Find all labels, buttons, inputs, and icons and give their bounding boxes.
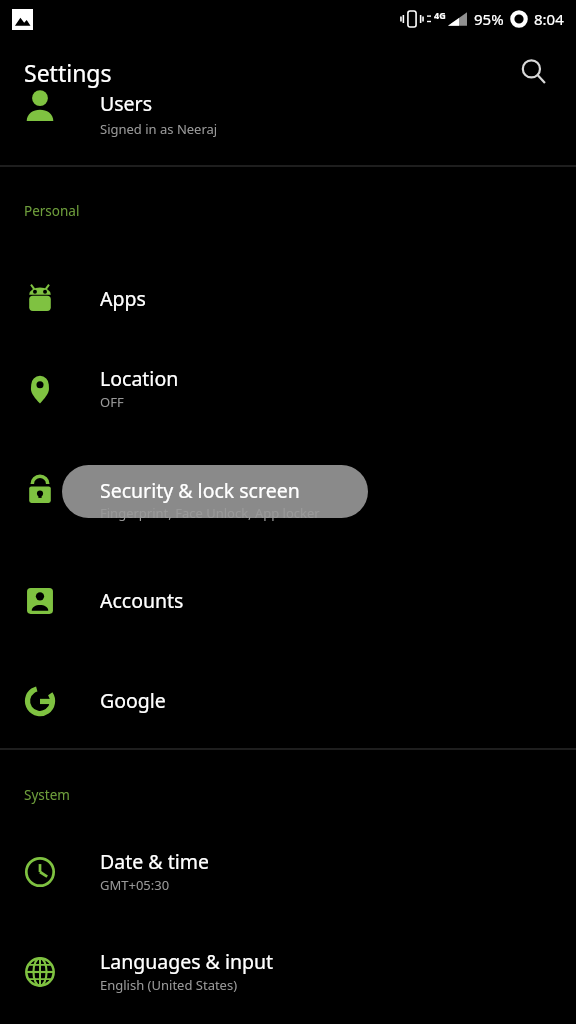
staticText: 95% bbox=[474, 9, 504, 29]
staticText: 4G bbox=[434, 9, 446, 21]
staticText: Accounts bbox=[100, 587, 184, 614]
staticText: Languages & input bbox=[100, 948, 274, 975]
staticText: Date & time bbox=[100, 848, 209, 875]
button[interactable]: Users bbox=[0, 96, 576, 165]
button[interactable]: Location bbox=[0, 352, 576, 434]
staticText: OFF bbox=[100, 393, 124, 411]
staticText: GMT+05:30 bbox=[100, 876, 170, 894]
button[interactable]: Accounts bbox=[0, 564, 576, 638]
staticText: Google bbox=[100, 687, 166, 714]
staticText: Settings bbox=[24, 57, 112, 88]
button[interactable]: Search bbox=[510, 48, 558, 96]
staticText: English (United States) bbox=[100, 976, 238, 994]
staticText: Signed in as Neeraj bbox=[100, 120, 218, 138]
staticText: Location bbox=[100, 365, 179, 392]
staticText: Apps bbox=[100, 285, 146, 312]
button[interactable]: Google bbox=[0, 664, 576, 738]
staticText: Security & lock screen bbox=[100, 477, 300, 504]
staticText: 8:04 bbox=[534, 9, 564, 29]
staticText: System bbox=[24, 786, 70, 804]
button[interactable]: Apps bbox=[0, 262, 576, 336]
button[interactable]: Languages & input bbox=[0, 935, 576, 1017]
staticText: Personal bbox=[24, 202, 80, 220]
staticText: Fingerprint, Face Unlock, App locker bbox=[100, 504, 320, 522]
staticText: Users bbox=[100, 90, 152, 117]
button[interactable]: Security & lock screen bbox=[0, 453, 576, 527]
button[interactable]: Date & time bbox=[0, 835, 576, 917]
